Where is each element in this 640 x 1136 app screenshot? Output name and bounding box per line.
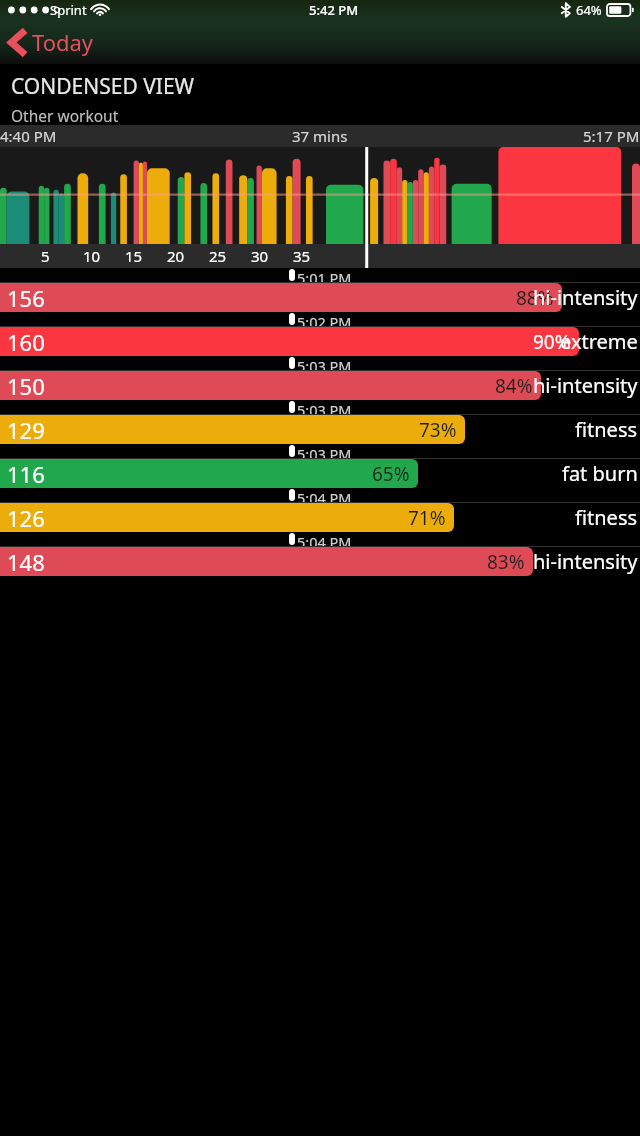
staticText: 126 bbox=[7, 503, 45, 532]
staticText: 73% bbox=[419, 417, 457, 443]
button[interactable]: 5:04 PM bbox=[0, 488, 640, 532]
staticText: CONDENSED VIEW bbox=[11, 72, 195, 101]
staticText: 37 mins bbox=[292, 126, 348, 146]
staticText: 20 bbox=[167, 246, 185, 266]
staticText: 71% bbox=[408, 505, 446, 531]
staticText: 5:03 PM bbox=[297, 444, 352, 458]
staticText: 84% bbox=[495, 373, 533, 399]
staticText: 30 bbox=[251, 246, 269, 266]
staticText: 5:03 PM bbox=[297, 356, 352, 370]
staticText: 4:40 PM bbox=[0, 126, 57, 146]
staticText: 150 bbox=[7, 371, 45, 400]
staticText: hi-intensity bbox=[533, 284, 638, 311]
staticText: 83% bbox=[487, 549, 525, 575]
staticText: 5:04 PM bbox=[297, 532, 352, 546]
staticText: 64% bbox=[576, 1, 602, 19]
staticText: 10 bbox=[83, 246, 101, 266]
staticText: fitness bbox=[575, 504, 638, 531]
staticText: 35 bbox=[293, 246, 311, 266]
button[interactable]: Back bbox=[0, 20, 640, 64]
staticText: 160 bbox=[7, 327, 45, 356]
staticText: fat burn bbox=[562, 460, 638, 487]
button[interactable]: 5:01 PM bbox=[0, 268, 640, 312]
staticText: Today bbox=[32, 27, 94, 57]
staticText: 129 bbox=[7, 415, 45, 444]
button[interactable]: 5:02 PM bbox=[0, 312, 640, 356]
staticText: 5:04 PM bbox=[297, 488, 352, 502]
other: Back bbox=[9, 29, 26, 56]
button[interactable]: 5:03 PM bbox=[0, 444, 640, 488]
staticText: Other workout bbox=[11, 105, 119, 125]
staticText: Sprint bbox=[50, 1, 87, 19]
staticText: 116 bbox=[7, 459, 45, 488]
button[interactable]: 5:03 PM bbox=[0, 400, 640, 444]
button[interactable]: 5:03 PM bbox=[0, 356, 640, 400]
staticText: 5:02 PM bbox=[297, 312, 352, 326]
staticText: 5 bbox=[41, 246, 50, 266]
staticText: hi-intensity bbox=[533, 372, 638, 399]
staticText: 156 bbox=[7, 283, 45, 312]
staticText: hi-intensity bbox=[533, 548, 638, 575]
staticText: fitness bbox=[575, 416, 638, 443]
staticText: 5:03 PM bbox=[297, 400, 352, 414]
staticText: 5:17 PM bbox=[583, 126, 640, 146]
staticText: 15 bbox=[125, 246, 143, 266]
button[interactable]: 5:04 PM bbox=[0, 532, 640, 576]
staticText: 88% bbox=[516, 285, 554, 311]
staticText: 25 bbox=[209, 246, 227, 266]
staticText: 65% bbox=[372, 461, 410, 487]
staticText: 5:42 PM bbox=[309, 1, 359, 19]
staticText: 5:01 PM bbox=[297, 268, 352, 282]
staticText: 90% bbox=[533, 329, 571, 355]
staticText: extreme bbox=[560, 328, 638, 355]
staticText: 148 bbox=[7, 547, 45, 576]
